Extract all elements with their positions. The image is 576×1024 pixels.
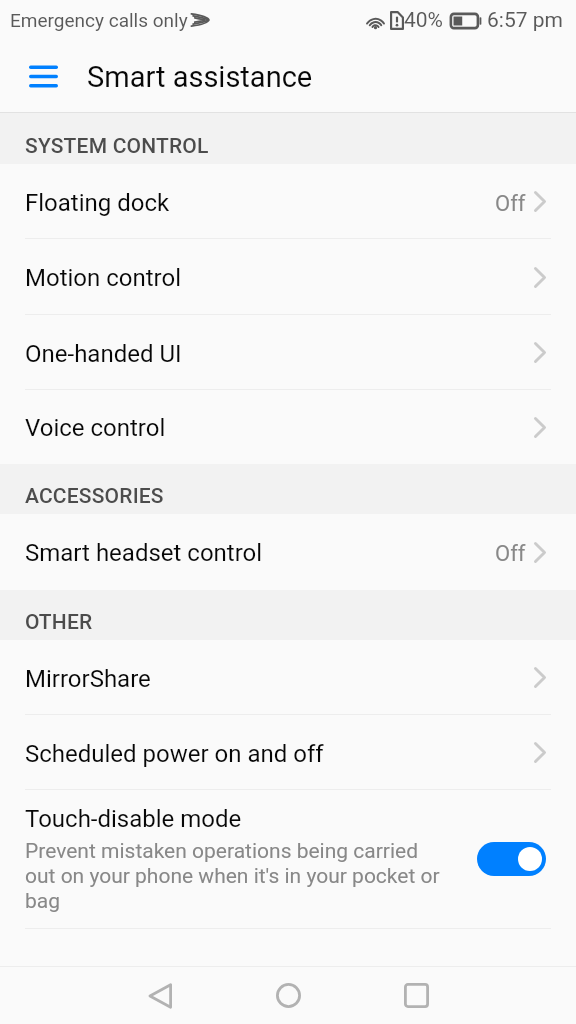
button[interactable]: MirrorShare bbox=[0, 640, 576, 715]
button[interactable]: Open navigation menu bbox=[14, 47, 72, 105]
staticText: MirrorShare bbox=[25, 665, 151, 693]
button[interactable]: Recent apps bbox=[352, 967, 480, 1024]
button[interactable]: Touch-disable mode bbox=[0, 790, 576, 929]
staticText: Prevent mistaken operations being carrie… bbox=[25, 838, 448, 913]
staticText: 6:57 pm bbox=[487, 8, 563, 33]
button[interactable]: Motion control bbox=[0, 239, 576, 315]
staticText: Motion control bbox=[25, 264, 181, 292]
button[interactable]: Back bbox=[96, 967, 224, 1024]
staticText: One-handed UI bbox=[25, 340, 182, 368]
button[interactable]: Touch-disable mode, on bbox=[477, 842, 546, 876]
button[interactable]: Floating dock bbox=[0, 164, 576, 239]
staticText: OTHER bbox=[25, 610, 93, 635]
button[interactable]: Home bbox=[224, 967, 352, 1024]
staticText: Voice control bbox=[25, 414, 166, 442]
staticText: Smart headset control bbox=[25, 539, 263, 567]
staticText: SYSTEM CONTROL bbox=[25, 134, 209, 159]
staticText: Scheduled power on and off bbox=[25, 740, 324, 768]
button[interactable]: Scheduled power on and off bbox=[0, 715, 576, 790]
button[interactable]: Voice control bbox=[0, 390, 576, 464]
staticText: Smart assistance bbox=[87, 60, 313, 94]
staticText: Emergency calls only bbox=[10, 9, 188, 31]
staticText: ACCESSORIES bbox=[25, 484, 164, 509]
button[interactable]: Smart headset control bbox=[0, 514, 576, 590]
staticText: Touch-disable mode bbox=[25, 805, 242, 833]
staticText: Floating dock bbox=[25, 189, 170, 217]
staticText: Off bbox=[495, 191, 526, 217]
button[interactable]: One-handed UI bbox=[0, 315, 576, 390]
staticText: 40% bbox=[404, 8, 443, 33]
staticText: Off bbox=[495, 541, 526, 567]
